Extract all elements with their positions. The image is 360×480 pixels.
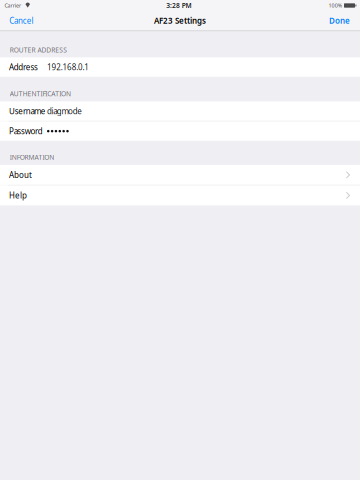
staticText: AF23 Settings xyxy=(154,15,206,26)
staticText: Password xyxy=(9,126,43,136)
staticText: ROUTER ADDRESS xyxy=(10,45,67,54)
staticText: diagmode xyxy=(47,106,82,116)
staticText: Username xyxy=(9,106,46,116)
staticText: 3:28 PM xyxy=(166,1,192,10)
button[interactable]: About xyxy=(0,165,360,185)
staticText: Carrier xyxy=(4,2,21,9)
staticText: Address xyxy=(9,62,38,72)
staticText: Done xyxy=(329,15,350,26)
button[interactable]: Cancel xyxy=(0,11,40,30)
staticText: 100% xyxy=(328,2,342,9)
staticText: Cancel xyxy=(9,15,34,26)
button[interactable]: Done xyxy=(323,11,360,30)
staticText: AUTHENTIFICATION xyxy=(10,89,71,98)
staticText: INFORMATION xyxy=(10,153,54,162)
staticText: About xyxy=(9,170,32,180)
staticText: Help xyxy=(9,190,27,201)
staticText: 192.168.0.1 xyxy=(47,62,89,72)
button[interactable]: Help xyxy=(0,185,360,205)
